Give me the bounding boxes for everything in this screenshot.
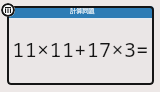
button[interactable]: 計算問題 [7,6,154,18]
staticText: 計算問題 [70,7,95,15]
button[interactable]: Open app [1,3,15,17]
staticText: 11×11+17×3= [12,36,149,63]
